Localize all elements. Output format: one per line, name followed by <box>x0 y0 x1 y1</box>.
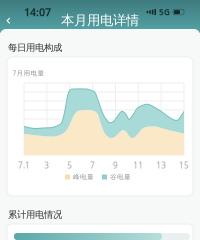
staticText: 13 <box>156 160 166 171</box>
staticText: 11 <box>133 160 143 171</box>
staticText: 7 <box>90 160 95 171</box>
staticText: 7月用电量 <box>12 68 44 77</box>
staticText: 每日用电构成 <box>8 42 62 53</box>
staticText: 谷电量 <box>110 173 131 181</box>
staticText: 7.1 <box>18 160 30 171</box>
staticText: 累计用电情况 <box>8 209 62 220</box>
button[interactable]: Back <box>3 14 13 27</box>
staticText: 15 <box>179 160 189 171</box>
staticText: 峰电量 <box>73 173 94 181</box>
staticText: 本月用电详情 <box>61 12 139 28</box>
staticText: 3 <box>44 160 49 171</box>
staticText: 9 <box>113 160 118 171</box>
staticText: 5 <box>67 160 72 171</box>
staticText: 5G <box>159 7 170 17</box>
staticText: 14:07 <box>24 5 51 19</box>
